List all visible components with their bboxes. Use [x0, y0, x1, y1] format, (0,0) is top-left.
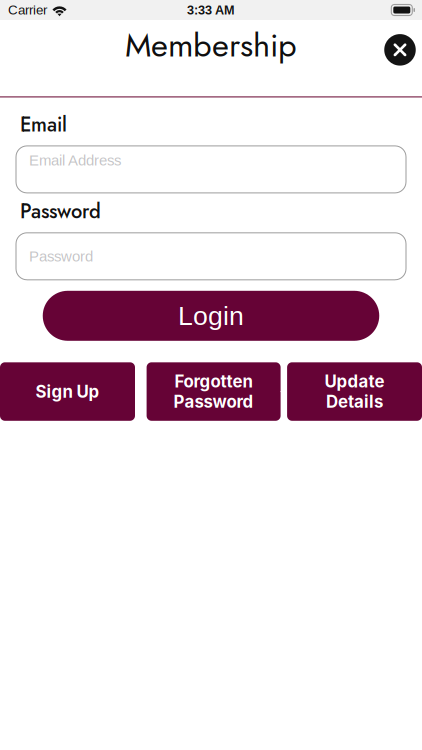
- staticText: Email Address: [29, 152, 121, 169]
- button[interactable]: Close: [378, 28, 422, 72]
- staticText: Login: [178, 301, 244, 331]
- staticText: Email: [20, 110, 67, 139]
- button[interactable]: Forgotten: [147, 362, 281, 421]
- staticText: Details: [326, 392, 383, 412]
- staticText: 3:33 AM: [187, 3, 235, 17]
- staticText: Membership: [125, 21, 297, 69]
- staticText: Sign Up: [35, 381, 99, 402]
- staticText: Forgotten: [175, 371, 253, 391]
- staticText: Carrier: [8, 3, 47, 17]
- staticText: Password: [20, 197, 101, 226]
- staticText: Password: [29, 248, 93, 265]
- staticText: Update: [325, 371, 385, 391]
- button[interactable]: Sign Up: [0, 362, 135, 421]
- button[interactable]: Update: [287, 362, 422, 421]
- staticText: Password: [174, 392, 254, 412]
- button[interactable]: Login: [43, 291, 379, 341]
